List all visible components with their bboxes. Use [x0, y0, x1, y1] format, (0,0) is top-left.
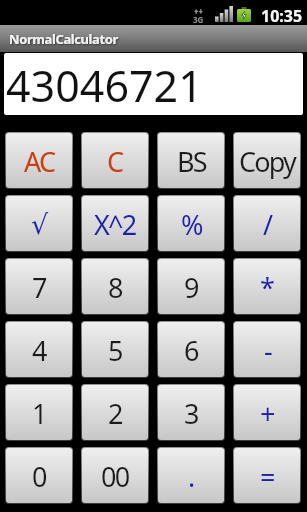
button[interactable]: / — [233, 195, 301, 252]
staticText: 3 — [184, 395, 198, 432]
button[interactable]: √ — [5, 195, 73, 252]
staticText: BS — [177, 143, 206, 180]
staticText: 10:35 — [261, 5, 303, 25]
button[interactable]: 7 — [5, 258, 73, 315]
button[interactable]: 1 — [5, 384, 73, 441]
staticText: * — [260, 269, 274, 306]
button[interactable]: + — [233, 384, 301, 441]
button[interactable]: * — [233, 258, 301, 315]
button[interactable]: % — [157, 195, 225, 252]
staticText: √ — [31, 209, 47, 240]
button[interactable]: 3 — [157, 384, 225, 441]
staticText: 1 — [32, 395, 46, 432]
button[interactable]: 00 — [81, 447, 149, 504]
button[interactable]: . — [157, 447, 225, 504]
button[interactable]: AC — [5, 132, 73, 189]
button[interactable]: 9 — [157, 258, 225, 315]
button[interactable]: 4 — [5, 321, 73, 378]
staticText: 43046721 — [6, 56, 203, 115]
staticText: 7 — [32, 269, 46, 306]
staticText: X^2 — [94, 206, 136, 243]
button[interactable]: Copy — [233, 132, 301, 189]
button[interactable]: 8 — [81, 258, 149, 315]
staticText: 2 — [108, 395, 122, 432]
staticText: 9 — [184, 269, 198, 306]
staticText: . — [188, 458, 194, 495]
button[interactable]: C — [81, 132, 149, 189]
button[interactable]: = — [233, 447, 301, 504]
button[interactable]: X^2 — [81, 195, 149, 252]
button[interactable]: 6 — [157, 321, 225, 378]
staticText: - — [264, 332, 271, 369]
button[interactable]: 0 — [5, 447, 73, 504]
staticText: 8 — [108, 269, 122, 306]
button[interactable]: 5 — [81, 321, 149, 378]
staticText: AC — [24, 143, 55, 180]
staticText: 00 — [101, 458, 129, 495]
staticText: + — [260, 395, 274, 432]
staticText: / — [263, 206, 272, 243]
staticText: % — [181, 206, 202, 243]
staticText: 6 — [184, 332, 198, 369]
staticText: = — [260, 458, 274, 495]
button[interactable]: - — [233, 321, 301, 378]
staticText: 4 — [32, 332, 46, 369]
staticText: 5 — [108, 332, 122, 369]
staticText: 3G — [193, 14, 204, 25]
staticText: C — [107, 143, 123, 180]
staticText: Copy — [239, 143, 296, 180]
button[interactable]: BS — [157, 132, 225, 189]
button[interactable]: 2 — [81, 384, 149, 441]
staticText: 0 — [32, 458, 46, 495]
staticText: NormalCalculator — [9, 30, 118, 48]
